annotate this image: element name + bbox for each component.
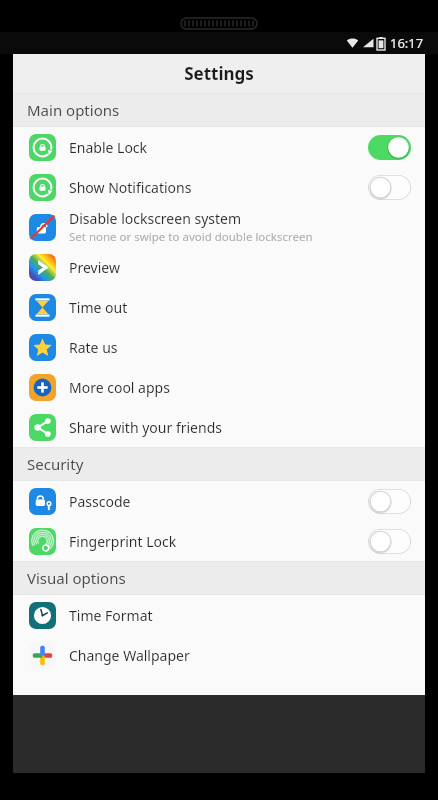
staticText: Time Format [69, 606, 153, 625]
button[interactable]: Enable Lock [13, 127, 425, 167]
button[interactable]: Disable lockscreen system [13, 207, 425, 247]
button[interactable]: Time Format [13, 595, 425, 635]
staticText: Visual options [27, 568, 126, 588]
staticText: Enable Lock [69, 138, 148, 157]
button[interactable]: Toggle off [368, 175, 411, 200]
button[interactable]: Show Notifications [13, 167, 425, 207]
button[interactable]: Share with your friends [13, 407, 425, 447]
staticText: Change Wallpaper [69, 646, 190, 665]
button[interactable]: Toggle off [368, 529, 411, 554]
staticText: Show Notifications [69, 178, 192, 197]
button[interactable]: Preview [13, 247, 425, 287]
staticText: Fingerprint Lock [69, 532, 177, 551]
staticText: Settings [184, 62, 254, 85]
staticText: Disable lockscreen system [69, 209, 242, 228]
button[interactable]: Change Wallpaper [13, 635, 425, 675]
staticText: Preview [69, 258, 120, 277]
staticText: Security [27, 454, 84, 474]
staticText: Time out [69, 298, 128, 317]
staticText: Share with your friends [69, 418, 222, 437]
staticText: Main options [27, 100, 120, 120]
button[interactable]: Time out [13, 287, 425, 327]
staticText: Set none or swipe to avoid double locksc… [69, 229, 313, 245]
staticText: Rate us [69, 338, 118, 357]
button[interactable]: Toggle off [368, 489, 411, 514]
staticText: More cool apps [69, 378, 170, 397]
button[interactable]: More cool apps [13, 367, 425, 407]
button[interactable]: Toggle on [368, 135, 411, 160]
button[interactable]: Rate us [13, 327, 425, 367]
button[interactable]: Passcode [13, 481, 425, 521]
staticText: 16:17 [390, 34, 424, 52]
button[interactable]: Fingerprint Lock [13, 521, 425, 561]
staticText: Passcode [69, 492, 131, 511]
